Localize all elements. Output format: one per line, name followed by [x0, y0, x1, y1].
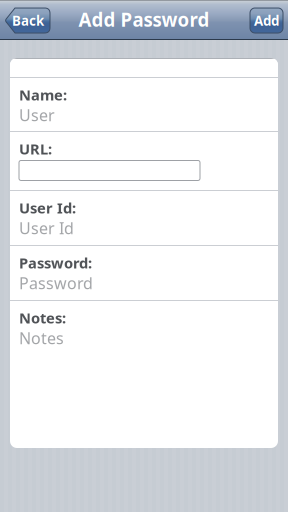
button[interactable]: Name:	[10, 78, 278, 131]
staticText: Notes:	[19, 308, 66, 327]
button[interactable]: Notes:	[10, 301, 278, 448]
button[interactable]: User Id:	[10, 191, 278, 245]
button[interactable]: Add	[250, 8, 283, 33]
button[interactable]: Back	[5, 8, 50, 33]
staticText: Add Password	[78, 7, 209, 32]
staticText: Add	[254, 12, 279, 29]
staticText: Password	[19, 272, 93, 294]
staticText: User	[19, 104, 55, 126]
staticText: Password:	[19, 253, 92, 272]
staticText: Name:	[19, 85, 67, 104]
staticText: Back	[12, 12, 44, 29]
staticText: Notes	[19, 327, 64, 349]
button[interactable]: Password:	[10, 246, 278, 300]
staticText: User Id:	[19, 198, 76, 217]
staticText: URL:	[19, 139, 52, 158]
staticText: User Id	[19, 217, 74, 239]
button[interactable]: URL:	[10, 132, 278, 190]
